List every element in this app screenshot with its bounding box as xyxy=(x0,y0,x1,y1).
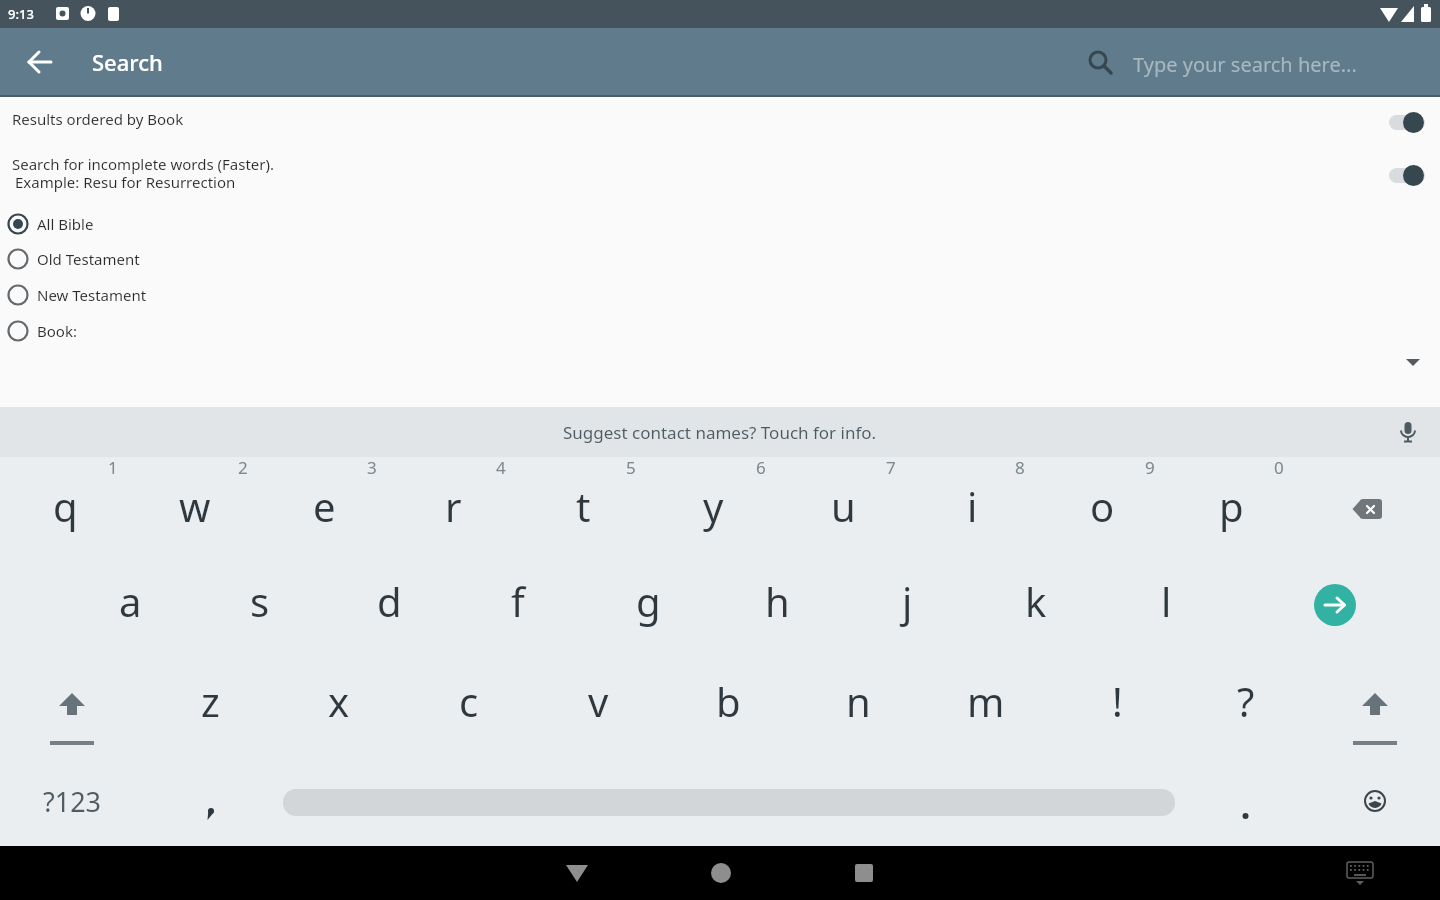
button[interactable]: ! xyxy=(1062,662,1172,740)
button[interactable] xyxy=(1389,164,1435,186)
staticText: 9:13 xyxy=(8,5,34,23)
button[interactable]: y xyxy=(658,467,768,545)
staticText: 1 xyxy=(108,456,118,479)
staticText: t xyxy=(576,479,591,533)
staticText: ?123 xyxy=(43,783,102,820)
button[interactable]: v xyxy=(543,662,653,740)
staticText: 8 xyxy=(1015,456,1025,479)
button[interactable]: h xyxy=(722,562,832,640)
staticText: n xyxy=(846,674,871,728)
button[interactable] xyxy=(1320,657,1430,753)
staticText: e xyxy=(313,479,336,533)
button[interactable] xyxy=(1394,418,1422,446)
staticText: New Testament xyxy=(37,285,147,305)
staticText: 5 xyxy=(626,456,636,479)
button[interactable]: ?123 xyxy=(12,766,132,836)
button[interactable] xyxy=(20,42,60,82)
button[interactable]: u xyxy=(788,467,898,545)
button[interactable]: i xyxy=(917,467,1027,545)
staticText: z xyxy=(201,674,220,728)
staticText: h xyxy=(765,574,790,628)
staticText: o xyxy=(1090,479,1115,533)
staticText: Example: Resu for Resurrection xyxy=(15,172,236,192)
staticText: l xyxy=(1161,574,1172,628)
button[interactable]: t xyxy=(528,467,638,545)
button[interactable] xyxy=(1320,766,1430,836)
button[interactable] xyxy=(689,856,753,892)
staticText: j xyxy=(902,574,913,628)
staticText: m xyxy=(967,674,1005,728)
staticText: 7 xyxy=(886,456,896,479)
button[interactable]: a xyxy=(75,562,185,640)
button[interactable]: b xyxy=(673,662,783,740)
staticText: x xyxy=(328,674,350,728)
button[interactable]: e xyxy=(269,467,379,545)
staticText: 2 xyxy=(238,456,248,479)
button[interactable]: Type your search here... xyxy=(1085,49,1345,79)
staticText: b xyxy=(716,674,741,728)
staticText: 9 xyxy=(1145,456,1155,479)
button[interactable]: z xyxy=(155,662,265,740)
staticText: c xyxy=(459,674,479,728)
button[interactable] xyxy=(1190,781,1300,851)
staticText: All Bible xyxy=(37,214,94,234)
button[interactable]: Results ordered by Book xyxy=(0,100,1440,140)
button[interactable] xyxy=(17,657,127,753)
staticText: r xyxy=(445,479,462,533)
button[interactable]: p xyxy=(1176,467,1286,545)
button[interactable]: q xyxy=(10,467,120,545)
staticText: ! xyxy=(1112,674,1123,728)
button[interactable] xyxy=(1290,566,1380,644)
staticText: Results ordered by Book xyxy=(12,109,184,129)
button[interactable] xyxy=(1313,470,1423,548)
button[interactable]: Old Testament xyxy=(0,243,1440,276)
staticText: v xyxy=(588,674,609,728)
button[interactable] xyxy=(155,781,265,851)
button[interactable]: x xyxy=(284,662,394,740)
button[interactable]: d xyxy=(334,562,444,640)
staticText: a xyxy=(119,574,142,628)
button[interactable]: c xyxy=(414,662,524,740)
staticText: u xyxy=(831,479,856,533)
staticText: k xyxy=(1025,574,1047,628)
staticText: 0 xyxy=(1274,456,1284,479)
button[interactable]: o xyxy=(1047,467,1157,545)
staticText: 6 xyxy=(756,456,766,479)
button[interactable]: s xyxy=(205,562,315,640)
button[interactable]: m xyxy=(931,662,1041,740)
staticText: i xyxy=(967,479,978,533)
button[interactable] xyxy=(545,856,609,892)
button[interactable] xyxy=(832,856,896,892)
button[interactable]: New Testament xyxy=(0,279,1440,312)
staticText: 4 xyxy=(496,456,506,479)
button[interactable]: w xyxy=(140,467,250,545)
button[interactable] xyxy=(1389,111,1435,133)
button[interactable]: f xyxy=(463,562,573,640)
button[interactable]: j xyxy=(852,562,962,640)
staticText: Search for incomplete words (Faster). xyxy=(12,154,275,174)
staticText: q xyxy=(53,479,78,533)
button[interactable] xyxy=(1336,854,1384,894)
button[interactable]: Suggest contact names? Touch for info. xyxy=(563,421,877,444)
staticText: 3 xyxy=(367,456,377,479)
staticText: ? xyxy=(1237,674,1255,728)
staticText: y xyxy=(703,479,724,533)
button[interactable]: r xyxy=(398,467,508,545)
staticText: Old Testament xyxy=(37,249,140,269)
staticText: Search xyxy=(92,47,163,77)
staticText: p xyxy=(1219,479,1244,533)
button[interactable]: All Bible xyxy=(0,208,1440,241)
staticText: g xyxy=(636,574,661,628)
button[interactable]: Search for incomplete words (Faster). xyxy=(0,147,1440,197)
button[interactable]: Book: xyxy=(0,315,1440,348)
button[interactable]: g xyxy=(593,562,703,640)
staticText: Book: xyxy=(37,321,77,341)
button[interactable]: k xyxy=(981,562,1091,640)
staticText: s xyxy=(250,574,270,628)
button[interactable]: ? xyxy=(1191,662,1301,740)
button[interactable]: l xyxy=(1111,562,1221,640)
button[interactable]: n xyxy=(803,662,913,740)
staticText: w xyxy=(179,479,211,533)
staticText: f xyxy=(511,574,525,628)
